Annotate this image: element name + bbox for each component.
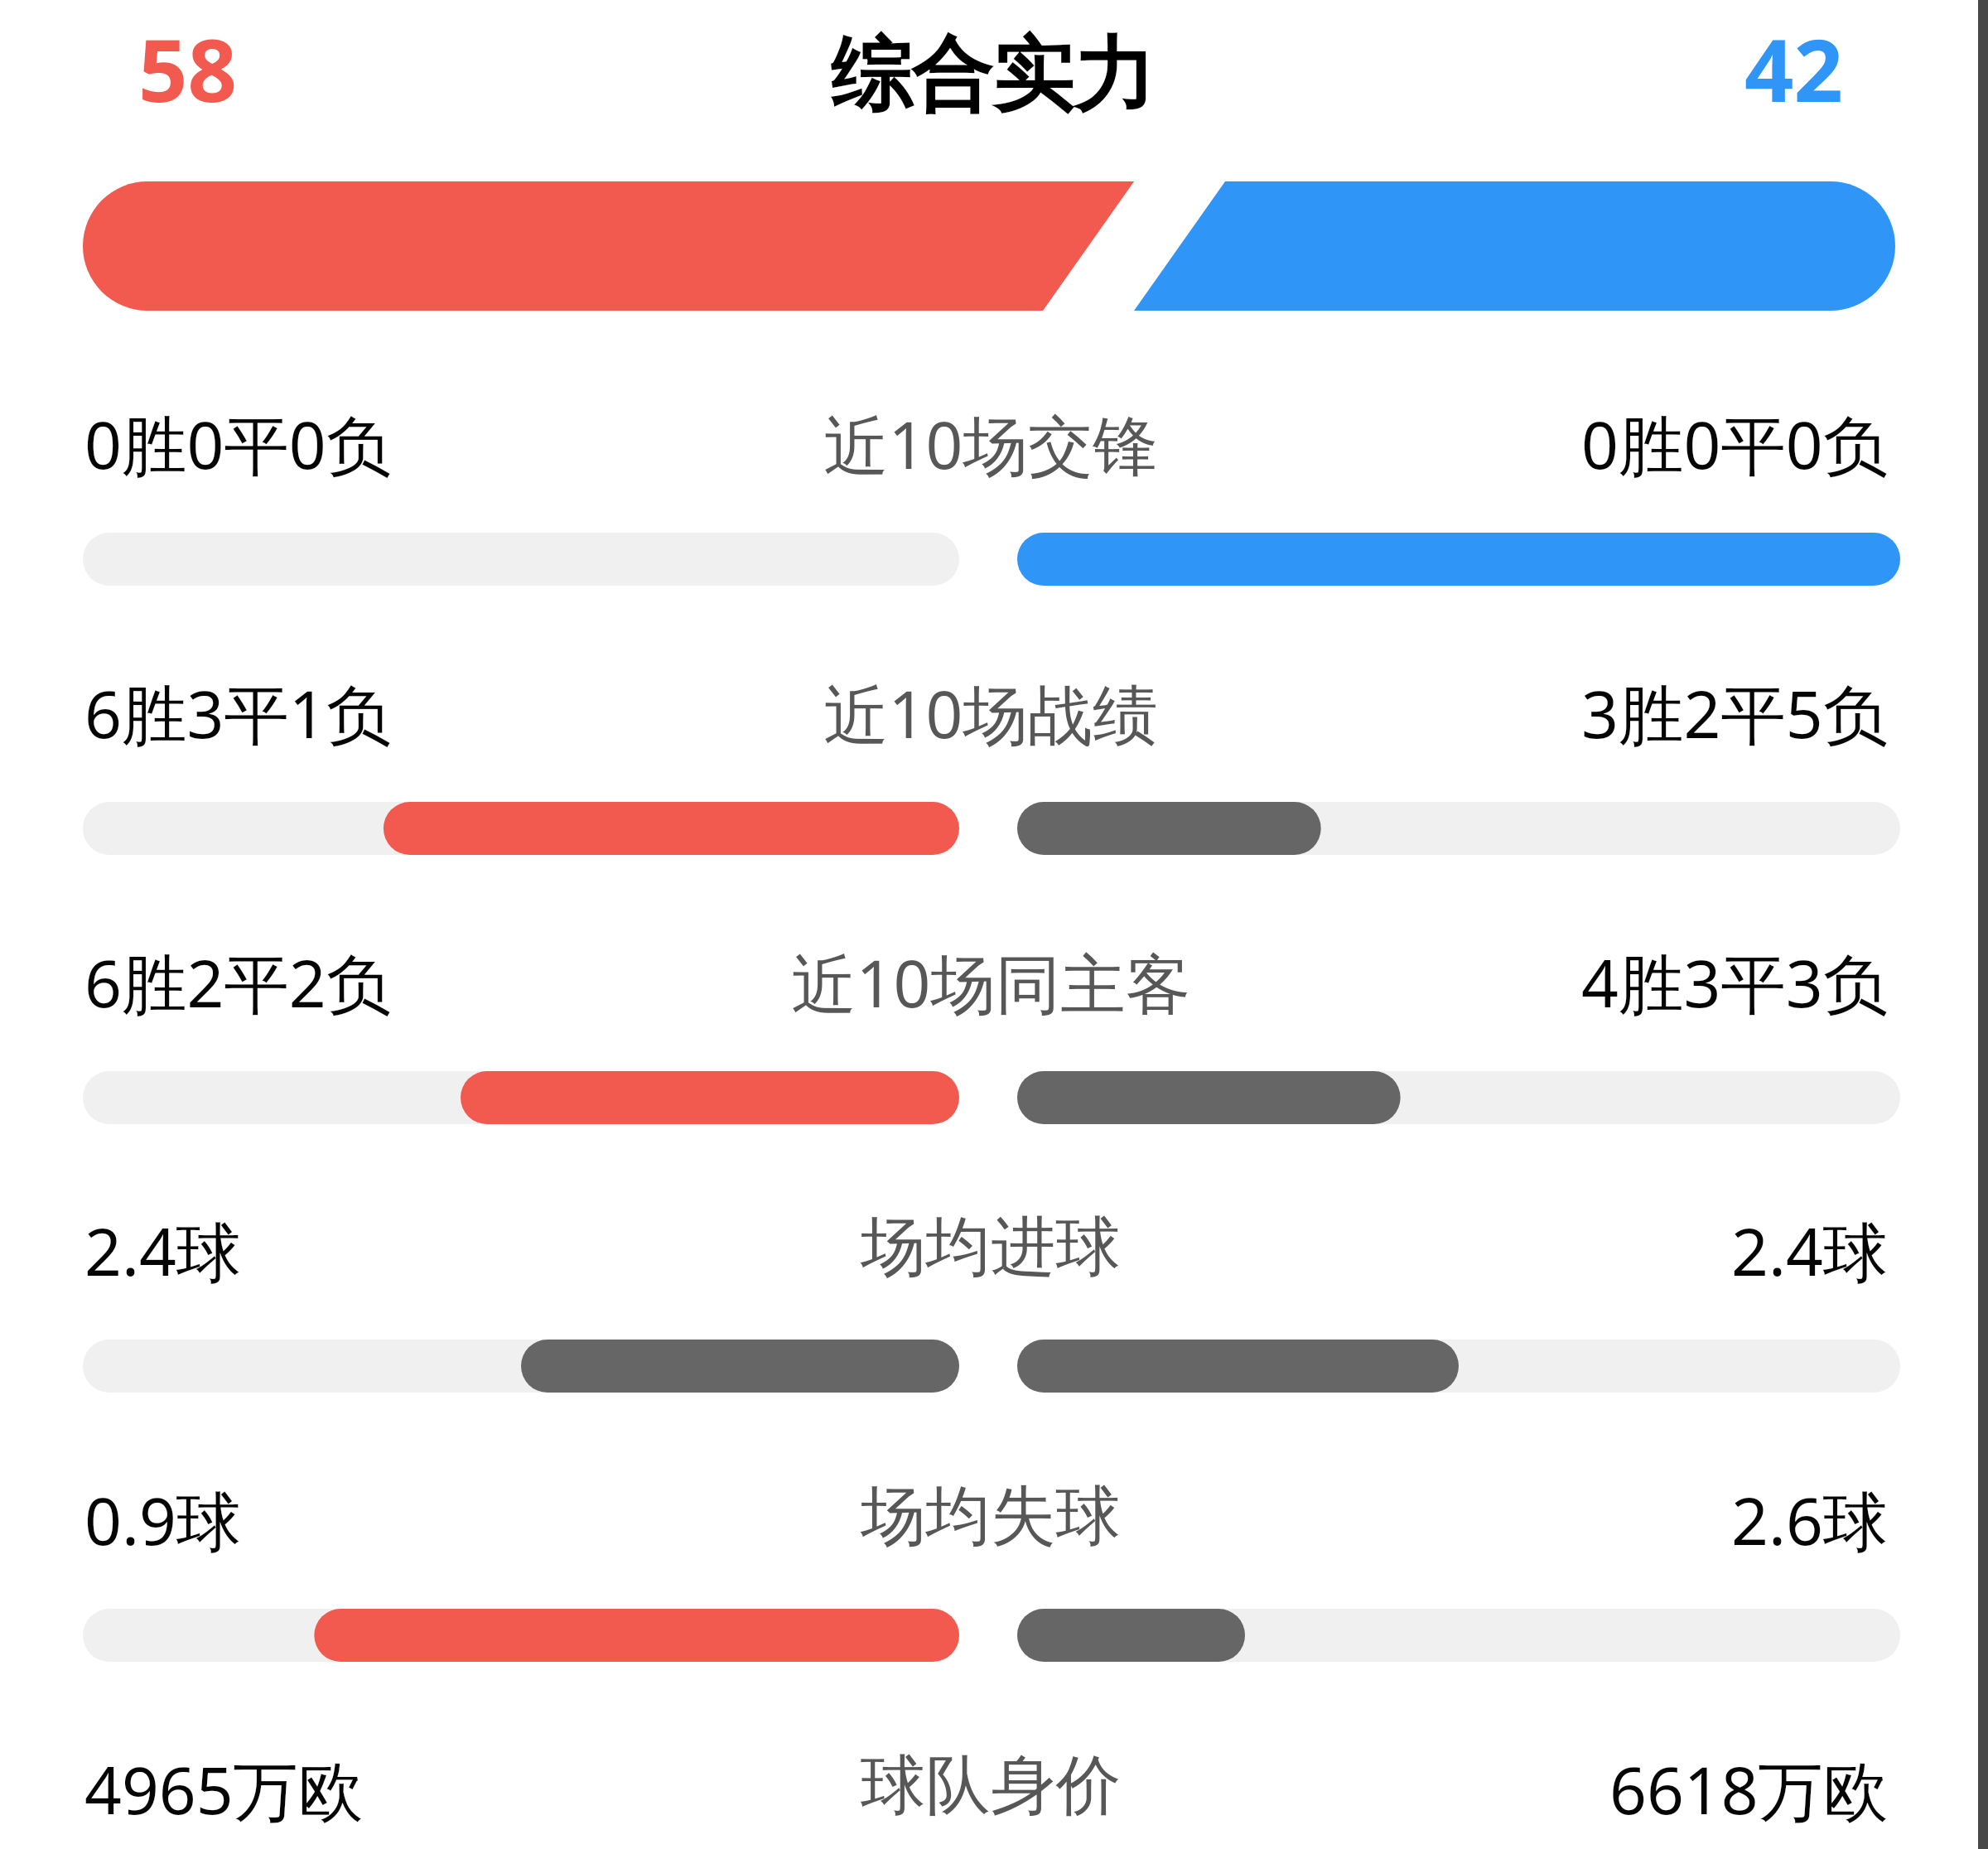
staticText: 场均失球 — [861, 1475, 1121, 1557]
staticText: 2.4球 — [1731, 1206, 1889, 1295]
button[interactable]: 综合实力对比 58 比 42 — [0, 181, 1988, 311]
staticText: 近10场同主客 — [791, 938, 1191, 1026]
button[interactable]: 2.4球 — [0, 1206, 1988, 1393]
button[interactable]: 0胜0平0负 — [0, 399, 1988, 586]
button[interactable]: 6胜3平1负 — [0, 669, 1988, 855]
staticText: 2.4球 — [84, 1206, 242, 1295]
staticText: 0胜0平0负 — [1581, 399, 1889, 488]
staticText: 6胜2平2负 — [84, 938, 392, 1026]
button[interactable]: 4965万欧 — [0, 1745, 1988, 1844]
staticText: 4胜3平3负 — [1581, 938, 1889, 1026]
staticText: 58 — [138, 10, 237, 128]
staticText: 3胜2平5负 — [1581, 669, 1889, 757]
staticText: 球队身价 — [861, 1745, 1121, 1827]
staticText: 近10场交锋 — [823, 399, 1158, 488]
staticText: 0.9球 — [84, 1475, 242, 1564]
staticText: 6618万欧 — [1609, 1745, 1889, 1833]
button[interactable]: 综合实力 — [830, 25, 1155, 127]
staticText: 6胜3平1负 — [84, 669, 392, 757]
staticText: 4965万欧 — [84, 1745, 364, 1833]
button[interactable]: 0.9球 — [0, 1475, 1988, 1662]
button[interactable]: 42 — [1744, 10, 1843, 128]
staticText: 0胜0平0负 — [84, 399, 392, 488]
staticText: 2.6球 — [1731, 1475, 1889, 1564]
staticText: 近10场战绩 — [823, 669, 1158, 757]
button[interactable]: 58 — [0, 10, 580, 134]
staticText: 场均进球 — [861, 1206, 1121, 1288]
button[interactable]: 6胜2平2负 — [0, 938, 1988, 1124]
